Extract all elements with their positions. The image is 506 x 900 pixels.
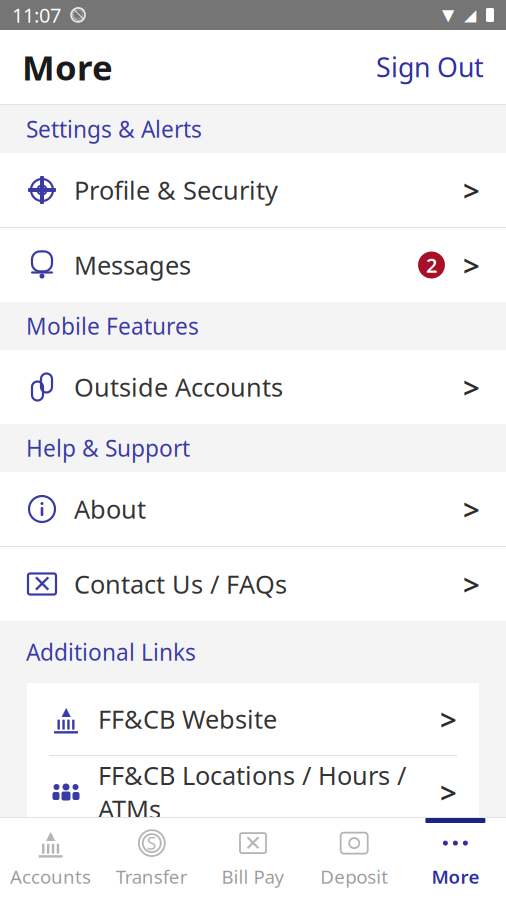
staticText: Outside Accounts (74, 370, 283, 404)
staticText: Help & Support (26, 433, 190, 463)
staticText: 11:07 (12, 2, 61, 28)
staticText: Additional Links (26, 637, 196, 667)
staticText: > (463, 245, 480, 284)
staticText: Profile & Security (74, 173, 278, 207)
button[interactable]: Outside Accounts (0, 350, 506, 424)
button[interactable]: S (101, 818, 202, 900)
staticText: Sign Out (376, 49, 484, 85)
staticText: > (463, 367, 480, 406)
button[interactable]: Sign Out (364, 41, 484, 93)
staticText: More (431, 864, 479, 889)
staticText: > (440, 699, 457, 738)
button[interactable]: Profile & Security (0, 153, 506, 227)
staticText: ◢ (464, 6, 476, 24)
button[interactable]: ✕ (0, 547, 506, 621)
button[interactable]: ▲ (0, 818, 101, 900)
staticText: More (22, 44, 113, 90)
staticText: FF&CB Locations / Hours / ATMs (98, 758, 406, 826)
staticText: Transfer (116, 864, 188, 889)
button[interactable]: FF&CB Locations / Hours / ATMs (27, 756, 479, 828)
staticText: ▼ (442, 6, 454, 24)
staticText: Accounts (10, 864, 91, 889)
staticText: Bill Pay (221, 864, 284, 889)
staticText: > (463, 170, 480, 209)
staticText: FF&CB Website (98, 702, 277, 736)
staticText: Messages (74, 248, 191, 282)
button[interactable]: Deposit (304, 818, 405, 900)
staticText: S (147, 832, 157, 855)
staticText: Mobile Features (26, 311, 199, 341)
staticText: Contact Us / FAQs (74, 567, 287, 601)
button[interactable]: Messages (0, 228, 506, 302)
staticText: About (74, 492, 146, 526)
staticText: ✕ (244, 831, 262, 855)
staticText: ▲ (61, 704, 70, 718)
staticText: > (440, 772, 457, 811)
staticText: Settings & Alerts (26, 114, 202, 144)
staticText: ✕ (32, 570, 52, 598)
staticText: 2 (426, 252, 437, 278)
button[interactable]: More (405, 818, 506, 900)
button[interactable]: ✕ (202, 818, 304, 900)
staticText: ⃠ (72, 8, 83, 21)
staticText: ▲ (46, 829, 55, 842)
staticText: > (463, 564, 480, 603)
button[interactable]: About (0, 472, 506, 546)
button[interactable]: ▲ (27, 683, 479, 755)
staticText: > (463, 489, 480, 528)
staticText: Deposit (320, 864, 388, 889)
